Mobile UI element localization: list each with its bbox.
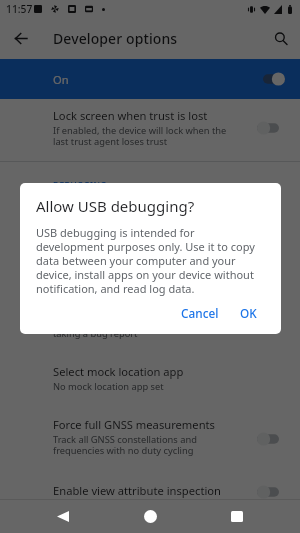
staticText: OK — [240, 305, 257, 321]
staticText: Enable view attribute inspection — [53, 483, 221, 498]
button[interactable]: USB debugging — [0, 197, 300, 251]
staticText: Track all GNSS constellations and freque… — [53, 433, 197, 457]
staticText: Revoke USB debugging authorizations — [53, 260, 255, 275]
button[interactable]: OK — [234, 299, 263, 327]
button[interactable]: Force full GNSS measurements — [0, 408, 300, 474]
staticText: Lock screen when trust is lost — [53, 108, 208, 123]
staticText: DEBUGGING — [53, 180, 107, 191]
button[interactable]: Bug report shortcut — [0, 291, 300, 355]
button[interactable]: Cancel — [175, 299, 225, 327]
staticText: Show a button in the power menu for taki… — [53, 316, 217, 340]
button[interactable]: On — [0, 59, 300, 99]
staticText: USB debugging — [53, 206, 135, 221]
staticText: On — [53, 72, 263, 87]
staticText: Developer options — [53, 29, 178, 48]
staticText: Force full GNSS measurements — [53, 417, 215, 432]
staticText: No mock location app set — [53, 380, 164, 393]
staticText: 11:57 — [6, 2, 33, 16]
staticText: Allow USB debugging? — [36, 196, 195, 216]
staticText: Cancel — [181, 305, 219, 321]
button[interactable]: Select mock location app — [0, 355, 300, 408]
button[interactable]: Home — [132, 499, 168, 533]
staticText: USB debugging is intended for developmen… — [36, 225, 265, 296]
button[interactable]: Revoke USB debugging authorizations — [0, 251, 300, 291]
button[interactable]: Search — [269, 27, 293, 51]
button[interactable]: Back — [45, 499, 81, 533]
button[interactable]: Navigate up — [9, 27, 32, 50]
staticText: Debug mode when USB is connected — [53, 222, 215, 235]
staticText: Select mock location app — [53, 364, 184, 379]
button[interactable]: Enable view attribute inspection — [0, 474, 300, 513]
button[interactable]: Recent apps — [219, 499, 255, 533]
button[interactable]: Lock screen when trust is lost — [0, 99, 300, 161]
staticText: If enabled, the device will lock when th… — [53, 124, 227, 148]
